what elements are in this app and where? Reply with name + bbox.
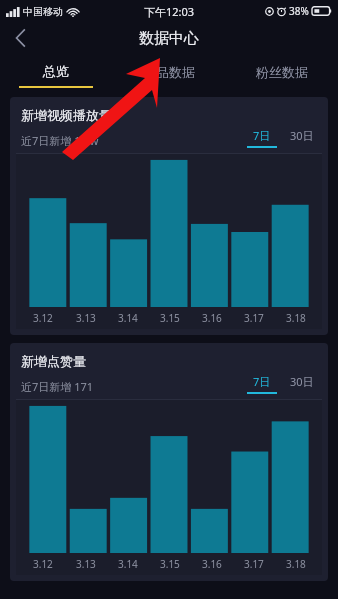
staticText: 3.18 (286, 311, 306, 325)
staticText: 近7日新增 171 (21, 379, 94, 394)
staticText: 下午12:03 (144, 4, 195, 19)
staticText: 数据中心 (139, 29, 199, 48)
button[interactable]: Back (0, 22, 40, 54)
staticText: 3.14 (118, 311, 138, 325)
staticText: 3.15 (160, 557, 180, 571)
button[interactable]: 30日 (287, 128, 317, 148)
staticText: 总览 (43, 63, 69, 79)
staticText: 粉丝数据 (256, 64, 308, 80)
staticText: 新增点赞量 (21, 353, 86, 369)
staticText: 中国移动 (23, 5, 63, 18)
staticText: 3.18 (286, 557, 306, 571)
staticText: 新增视频播放量 (21, 107, 112, 123)
staticText: 3.15 (160, 311, 180, 325)
staticText: 38% (289, 4, 309, 18)
staticText: 3.12 (33, 311, 53, 325)
button[interactable]: 7日 (247, 128, 277, 148)
staticText: 3.14 (118, 557, 138, 571)
staticText: 30日 (290, 128, 314, 143)
button[interactable]: 7日 (247, 374, 277, 394)
button[interactable]: 粉丝数据 (225, 54, 338, 91)
staticText: 3.16 (202, 311, 222, 325)
staticText: 7日 (253, 374, 271, 389)
button[interactable]: 30日 (287, 374, 317, 394)
staticText: 近7日新增 1.6w (21, 133, 99, 148)
staticText: 3.16 (202, 557, 222, 571)
staticText: 3.13 (76, 557, 96, 571)
staticText: 作品数据 (143, 64, 195, 80)
button[interactable]: 作品数据 (112, 54, 225, 91)
staticText: 7日 (253, 128, 271, 143)
staticText: 3.17 (244, 557, 264, 571)
button[interactable]: 总览 (0, 54, 112, 91)
staticText: 3.13 (76, 311, 96, 325)
staticText: 3.17 (244, 311, 264, 325)
staticText: 30日 (290, 374, 314, 389)
staticText: 3.12 (33, 557, 53, 571)
